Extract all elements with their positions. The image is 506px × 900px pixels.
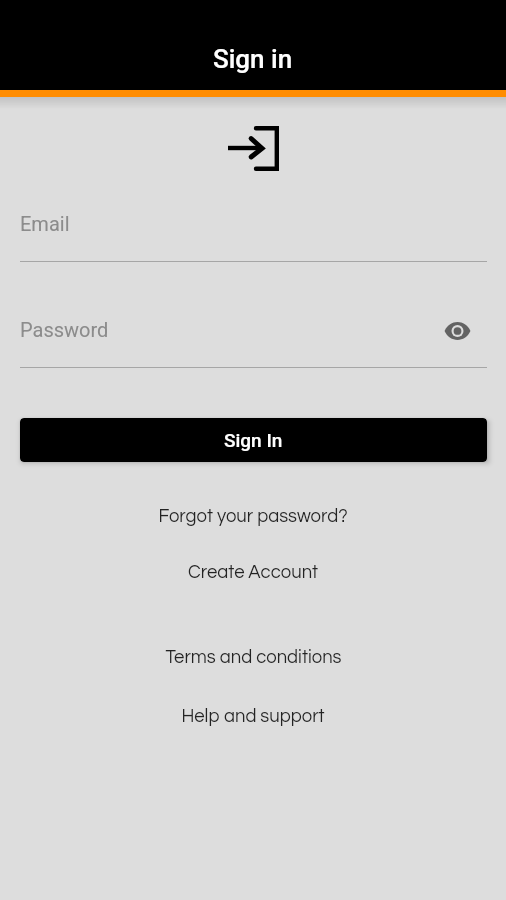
staticText: Help and support xyxy=(181,707,325,726)
button[interactable]: Email xyxy=(20,208,487,262)
button[interactable]: Terms and conditions xyxy=(0,644,506,670)
button[interactable]: Help and support xyxy=(0,703,506,729)
button[interactable]: Create Account xyxy=(0,559,506,585)
button[interactable]: Sign In xyxy=(20,418,487,462)
button[interactable]: Password xyxy=(20,314,487,368)
staticText: Sign In xyxy=(224,429,283,451)
button[interactable]: Forgot your password? xyxy=(0,503,506,529)
other: Show password xyxy=(444,322,471,340)
other: Sign in xyxy=(228,126,279,171)
staticText: Terms and conditions xyxy=(165,648,342,667)
staticText: Email xyxy=(20,212,70,235)
staticText: Create Account xyxy=(188,563,318,582)
staticText: Sign in xyxy=(213,44,293,74)
staticText: Forgot your password? xyxy=(158,507,348,526)
staticText: Password xyxy=(20,318,109,341)
